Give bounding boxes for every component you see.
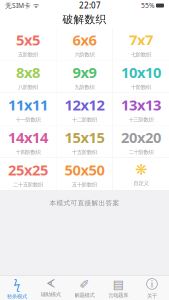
staticText: 14x14	[8, 127, 48, 147]
staticText: 10x10	[121, 62, 161, 82]
staticText: 6x6	[72, 30, 96, 49]
staticText: 本模式可直接解出答案	[49, 199, 119, 207]
staticText: 十一阶数织	[15, 116, 40, 123]
staticText: 十五阶数织	[72, 149, 97, 156]
staticText: 13x13	[121, 95, 161, 114]
button[interactable]: 10x10	[113, 60, 169, 92]
staticText: 六阶数织	[74, 51, 94, 58]
button[interactable]: 7x7	[113, 28, 169, 60]
staticText: ▤	[113, 277, 124, 291]
button[interactable]: 5x5	[0, 28, 56, 60]
staticText: 破解数织	[62, 13, 106, 26]
staticText: 15x15	[64, 127, 104, 147]
staticText: 十三阶数织	[128, 116, 153, 123]
button[interactable]: ᗉ	[34, 276, 68, 300]
staticText: ⓘ	[146, 277, 158, 292]
button[interactable]: ▤	[101, 276, 135, 300]
button[interactable]: 13x13	[113, 93, 169, 125]
staticText: 二十五阶数织	[13, 181, 43, 188]
staticText: 22:07	[79, 0, 101, 11]
staticText: 辅助模式	[41, 291, 61, 298]
button[interactable]: ⓘ	[135, 276, 169, 300]
staticText: 7x7	[129, 30, 153, 49]
staticText: 五阶数织	[18, 51, 38, 58]
staticText: 无SIM卡 ᯤ	[5, 1, 39, 10]
staticText: 二十阶数织	[128, 149, 153, 156]
button[interactable]: ϟ	[0, 276, 34, 300]
staticText: 自定义	[133, 180, 148, 187]
button[interactable]: 11x11	[0, 93, 56, 125]
staticText: 八阶数织	[18, 84, 38, 91]
staticText: 20x20	[121, 127, 161, 147]
button[interactable]: 14x14	[0, 125, 56, 157]
staticText: 55%	[141, 1, 155, 10]
button[interactable]: ✐	[68, 276, 101, 300]
staticText: 十阶数织	[131, 84, 151, 91]
button[interactable]: 6x6	[56, 28, 112, 60]
staticText: 9x9	[72, 62, 96, 82]
button[interactable]: 50x50	[56, 158, 112, 190]
button[interactable]: 8x8	[0, 60, 56, 92]
staticText: 11x11	[8, 95, 48, 114]
staticText: ❋	[135, 161, 147, 178]
staticText: 8x8	[16, 62, 40, 82]
staticText: ᗉ	[46, 278, 55, 290]
staticText: 关于	[147, 293, 157, 299]
staticText: 50x50	[64, 160, 104, 179]
staticText: 云端题库	[108, 292, 128, 299]
button[interactable]: 15x15	[56, 125, 112, 157]
staticText: 九阶数织	[74, 84, 94, 91]
staticText: 解题模式	[74, 292, 94, 299]
staticText: 5x5	[16, 30, 40, 49]
staticText: ϟ	[13, 276, 20, 292]
button[interactable]: 25x25	[0, 158, 56, 190]
staticText: 秒杀模式	[7, 293, 27, 300]
staticText: 七阶数织	[131, 51, 151, 58]
staticText: 25x25	[8, 160, 48, 179]
staticText: 十四阶数织	[15, 149, 40, 156]
staticText: 五十阶数织	[72, 181, 97, 188]
staticText: ✐	[79, 277, 89, 291]
button[interactable]: 12x12	[56, 93, 112, 125]
staticText: 十二阶数织	[72, 116, 97, 123]
button[interactable]: 自定义	[113, 158, 169, 190]
staticText: 12x12	[64, 95, 104, 114]
button[interactable]: 20x20	[113, 125, 169, 157]
button[interactable]: 9x9	[56, 60, 112, 92]
